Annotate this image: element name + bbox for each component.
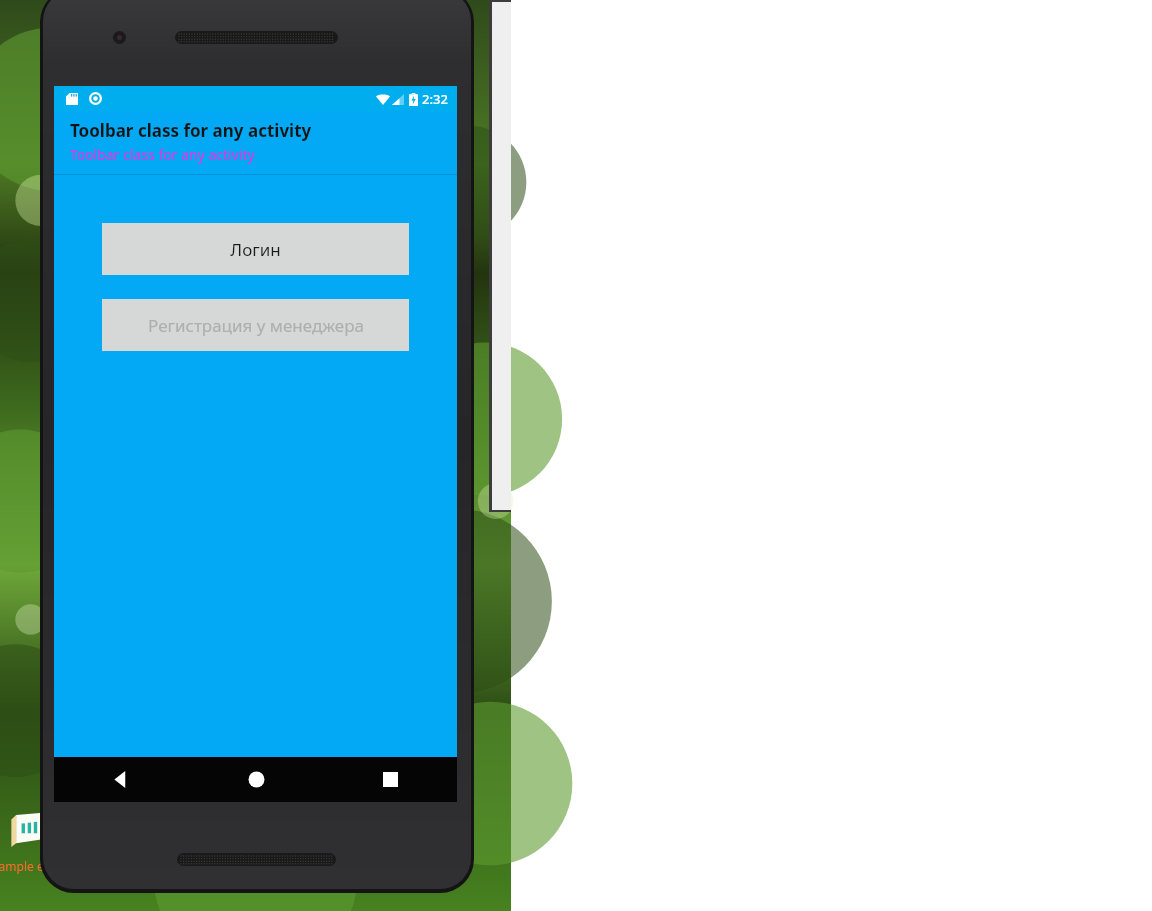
- staticText: Toolbar class for any activity: [70, 119, 312, 142]
- staticText: Sample e: [0, 858, 44, 874]
- button[interactable]: Home: [189, 757, 323, 802]
- staticText: Регистрация у менеджера: [148, 314, 364, 337]
- staticText: Toolbar class for any activity: [70, 145, 255, 164]
- staticText: Логин: [230, 238, 281, 261]
- button[interactable]: Back: [54, 757, 189, 802]
- button[interactable]: Регистрация у менеджера: [102, 299, 409, 351]
- staticText: 2:32: [422, 90, 448, 108]
- button[interactable]: Логин: [102, 223, 409, 275]
- button[interactable]: Recents: [323, 757, 457, 802]
